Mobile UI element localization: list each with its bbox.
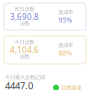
staticText: 歩数 (19, 20, 29, 27)
staticText: 今日歩数 (14, 39, 34, 46)
staticText: 今日最大歩数記録 (5, 74, 45, 81)
staticText: 88% (58, 49, 72, 57)
staticText: 4447.0 (5, 80, 33, 90)
staticText: 95% (58, 16, 72, 24)
staticText: 達成率 (58, 42, 73, 49)
staticText: 達成率 (58, 9, 73, 16)
staticText: 歩数 (19, 53, 29, 60)
staticText: 3,690.8 (10, 12, 39, 22)
staticText: 昨日歩数 (14, 6, 34, 13)
staticText: 目標達成 (61, 84, 81, 90)
staticText: 4,104.6 (10, 45, 39, 55)
